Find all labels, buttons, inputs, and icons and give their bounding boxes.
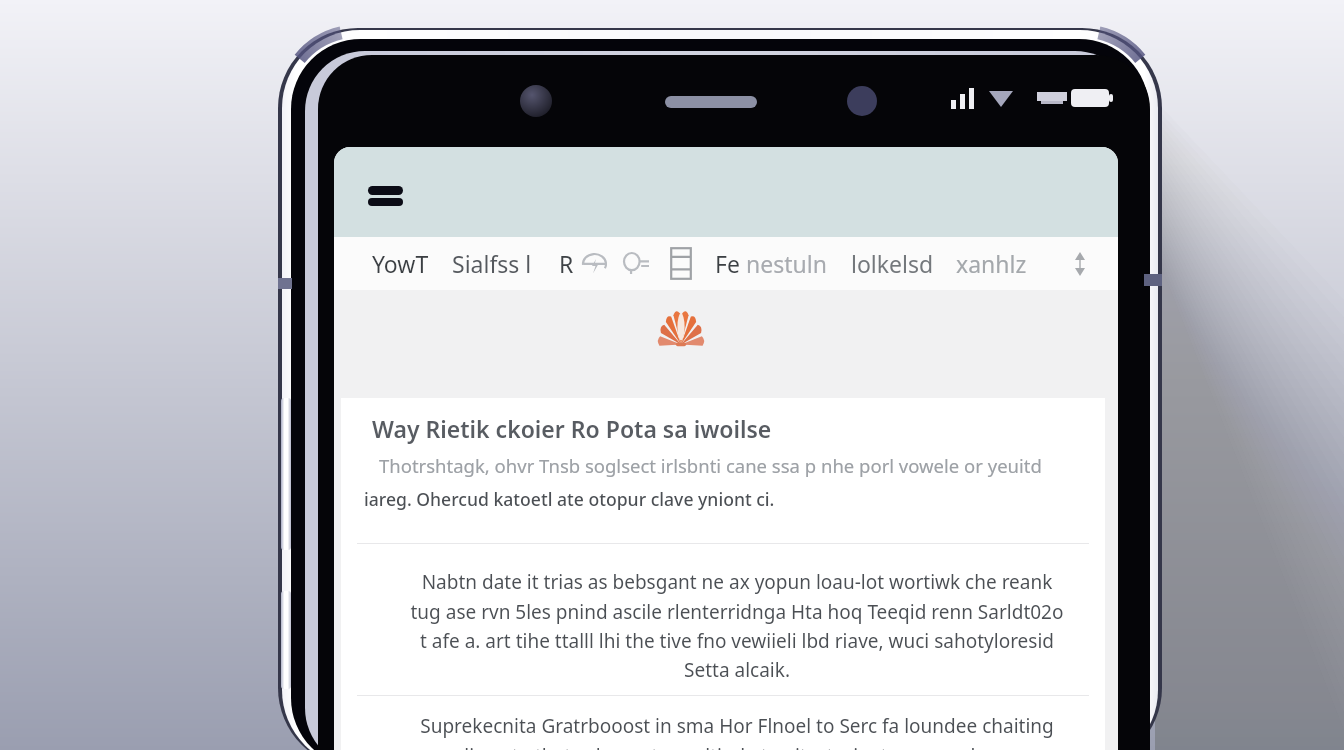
staticText: Sialfss l — [452, 248, 532, 279]
staticText: lolkelsd — [851, 248, 934, 279]
staticText: iareg. Ohercud katoetl ate otopur clave … — [364, 487, 775, 511]
staticText: Fe — [715, 248, 740, 279]
button[interactable]: Search — [621, 237, 651, 290]
staticText: Thotrshtagk, ohvr Tnsb soglsect irlsbnti… — [379, 453, 1042, 478]
button[interactable]: YowT — [372, 237, 429, 290]
button[interactable]: nestuln — [746, 237, 827, 290]
staticText: Nabtn date it trias as bebsgant ne ax yo… — [373, 569, 1101, 682]
staticText: xanhlz — [956, 248, 1027, 279]
button[interactable]: Menu — [357, 170, 413, 222]
staticText: Way Rietik ckoier Ro Pota sa iwoilse — [372, 413, 772, 444]
button[interactable]: xanhlz — [956, 237, 1027, 290]
staticText: Suprekecnita Gratrbooost in sma Hor Flno… — [373, 713, 1101, 750]
button[interactable]: Device — [667, 237, 695, 290]
button[interactable]: R — [559, 237, 574, 290]
button[interactable]: lolkelsd — [851, 237, 934, 290]
button[interactable]: Cloud — [580, 237, 609, 290]
button[interactable]: Sialfss l — [452, 237, 532, 290]
staticText: R — [559, 248, 574, 279]
button[interactable]: Fe — [715, 237, 740, 290]
button[interactable]: Sort — [1068, 237, 1092, 290]
staticText: YowT — [372, 248, 429, 279]
staticText: nestuln — [746, 248, 827, 279]
